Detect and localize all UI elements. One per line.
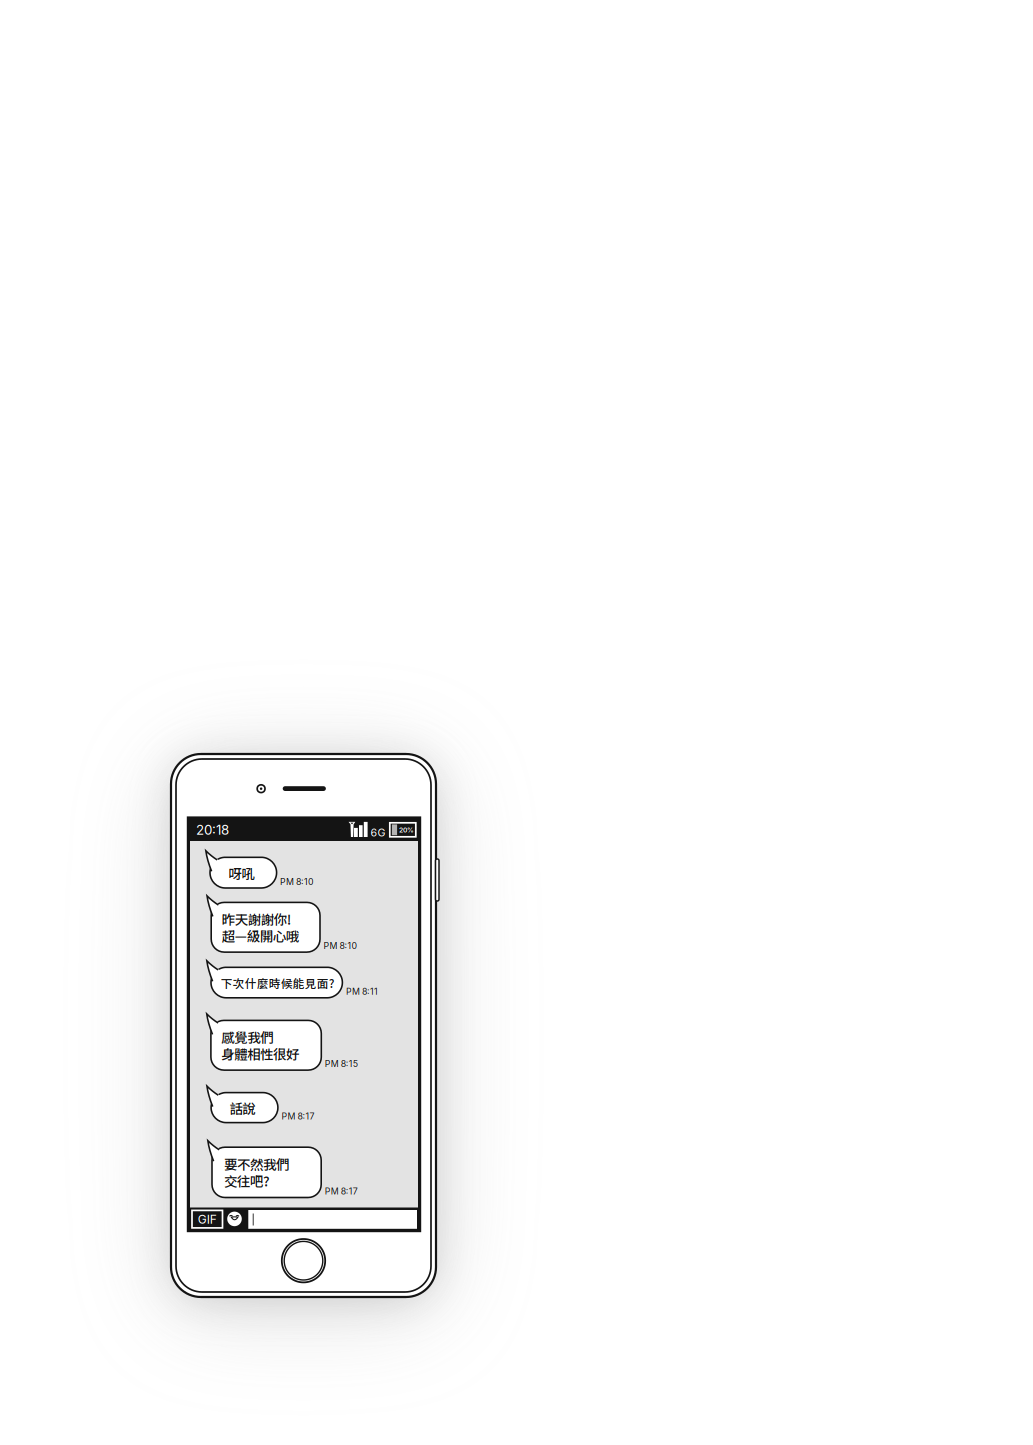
staticText: PM 8:17 (281, 1111, 314, 1122)
staticText: 身體相性很好 (221, 1044, 299, 1063)
staticText: 超—級開心哦 (222, 926, 299, 945)
staticText: 昨天謝謝你! (222, 909, 292, 929)
staticText: 下次什麼時候能見面? (221, 975, 335, 991)
button[interactable]: GIF (0, 0, 1033, 1445)
button[interactable]: Stickers (0, 0, 1033, 1445)
staticText: 交往吧? (224, 1171, 270, 1190)
staticText: 呀吼 (228, 863, 254, 883)
staticText: 話說 (230, 1098, 256, 1118)
staticText: GIF (198, 1212, 217, 1226)
staticText: 20% (399, 826, 414, 834)
staticText: PM 8:10 (323, 940, 357, 951)
staticText: PM 8:11 (346, 986, 378, 997)
staticText: 6G (370, 826, 385, 839)
staticText: PM 8:10 (280, 876, 314, 887)
staticText: PM 8:17 (325, 1186, 358, 1196)
button[interactable]: Message field (0, 0, 1033, 1445)
staticText: 要不然我們 (224, 1154, 289, 1174)
staticText: 20:18 (196, 822, 229, 838)
staticText: PM 8:15 (325, 1058, 358, 1069)
staticText: 感覺我們 (221, 1027, 273, 1047)
